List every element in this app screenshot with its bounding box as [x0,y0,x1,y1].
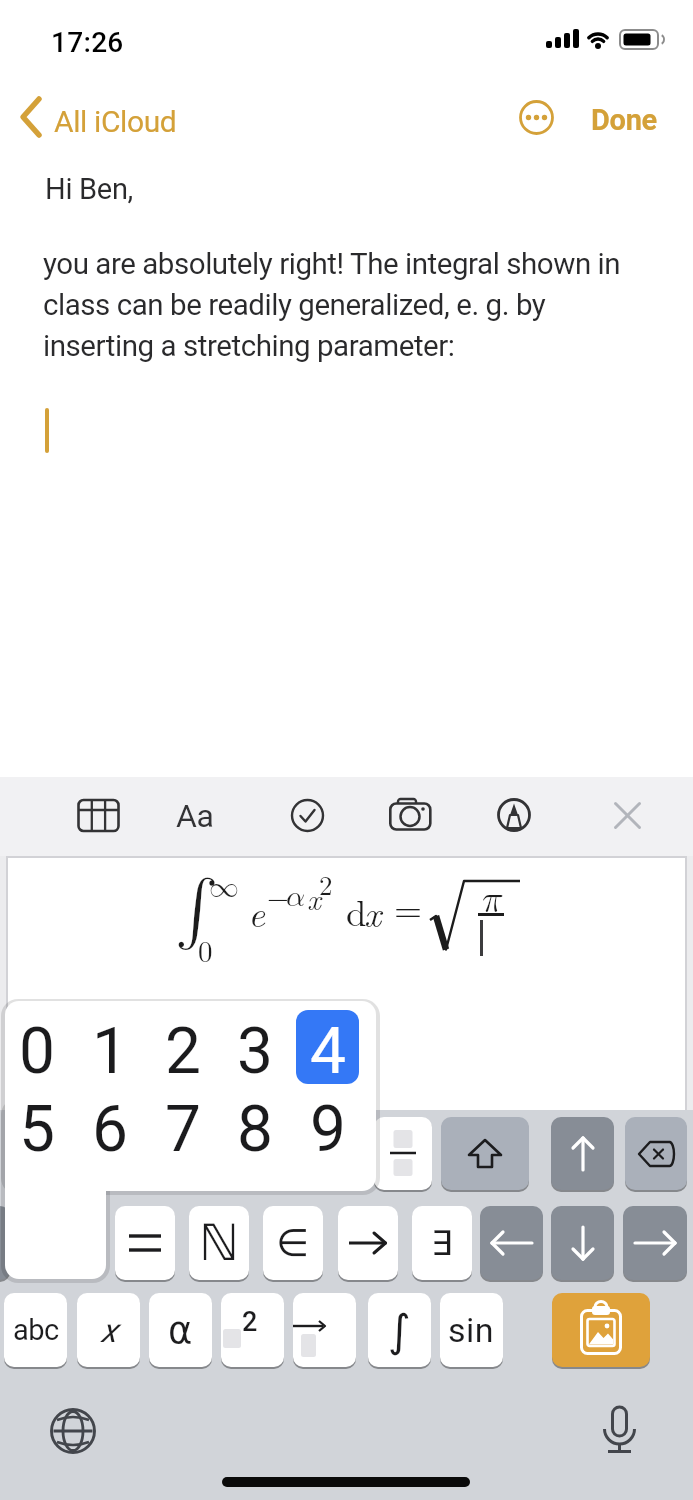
button[interactable]: ∃ [412,1206,472,1280]
button[interactable]: 3 [218,1014,290,1086]
button[interactable] [389,797,433,833]
staticText: ∫ [175,878,219,943]
staticText: − [267,884,289,912]
button[interactable]: Done [591,103,671,143]
button[interactable]: sin [440,1293,503,1367]
staticText: 𝜋 [482,882,503,918]
button[interactable] [338,1206,398,1280]
staticText: you are absolutely right! The integral s… [43,247,621,364]
button[interactable]: ∈ [263,1206,323,1280]
button[interactable] [625,1117,687,1190]
staticText: e [248,885,266,937]
button[interactable] [623,1206,687,1280]
staticText: x [307,876,321,918]
staticText: abc [13,1313,59,1347]
button[interactable] [221,1293,284,1367]
button[interactable] [290,798,325,833]
staticText: 2 [319,865,333,903]
staticText: 5 [19,1092,54,1164]
staticText: ℕ [199,1214,240,1272]
button[interactable] [51,1409,95,1453]
staticText: α [168,1309,193,1352]
staticText: ∫ [388,1305,411,1356]
staticText: 0 [19,1014,54,1086]
button[interactable] [518,99,555,136]
staticText: sin [448,1310,495,1350]
button[interactable]: All iCloud [20,93,200,141]
button[interactable]: x [77,1293,140,1367]
staticText: 9 [310,1092,345,1164]
staticText: 2 [242,1306,258,1338]
staticText: 4 [310,1014,345,1086]
button[interactable] [497,798,531,832]
button[interactable]: 1 [73,1014,145,1086]
staticText: ∞ [209,873,239,903]
button[interactable] [600,1403,642,1457]
button[interactable] [0,1206,10,1280]
staticText: 17:26 [51,26,124,59]
staticText: 3 [237,1014,272,1086]
button[interactable]: 7 [146,1092,218,1164]
staticText: Done [591,103,657,137]
button[interactable]: 0 [0,1014,72,1086]
button[interactable]: α [149,1293,212,1367]
button[interactable]: 2 [146,1014,218,1086]
button[interactable] [611,799,644,832]
button[interactable]: 8 [218,1092,290,1164]
staticText: ∃ [431,1223,453,1263]
staticText: x [101,1311,117,1350]
button[interactable]: ∫ [368,1293,431,1367]
button[interactable]: 9 [291,1092,363,1164]
staticText: 𝛼 [286,882,306,912]
button[interactable]: ℕ [189,1206,249,1280]
button[interactable] [115,1206,175,1280]
staticText: 6 [92,1092,127,1164]
button[interactable]: abc [4,1293,67,1367]
staticText: 2 [165,1014,200,1086]
staticText: All iCloud [54,104,177,139]
button[interactable]: 4 [291,1014,363,1086]
button[interactable] [293,1293,356,1367]
staticText: Hi Ben, [45,172,134,206]
button[interactable] [77,798,121,834]
staticText: 1 [92,1014,127,1086]
button[interactable] [480,1206,543,1280]
button[interactable] [551,1206,614,1280]
button[interactable] [441,1117,529,1190]
staticText: 7 [165,1092,200,1164]
staticText: ∈ [276,1221,310,1265]
staticText: 8 [237,1092,272,1164]
button[interactable] [374,1117,432,1190]
button[interactable] [552,1293,650,1367]
staticText: x [364,885,382,937]
staticText: Aa [176,797,214,835]
button[interactable]: Aa [176,797,236,837]
staticText: 0 [198,929,213,970]
staticText: d [346,884,367,936]
button[interactable] [551,1117,614,1190]
staticText: = [394,893,423,929]
button[interactable]: 6 [73,1092,145,1164]
button[interactable]: 5 [0,1092,72,1164]
